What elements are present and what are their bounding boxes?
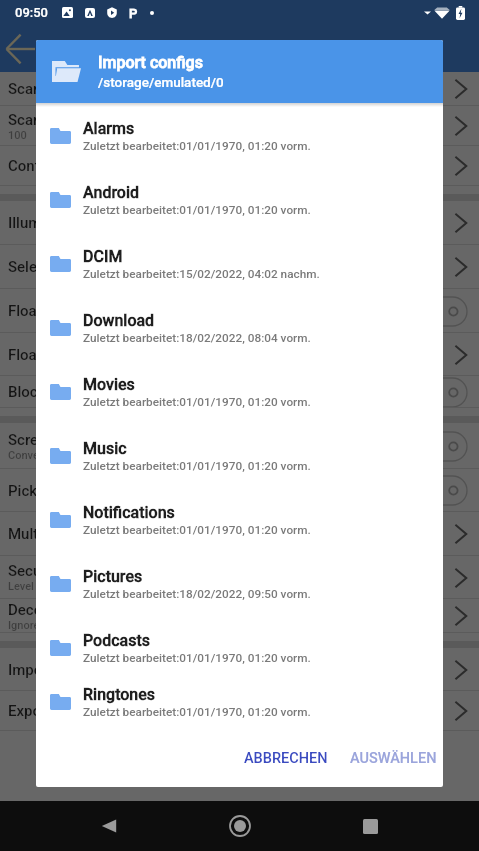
staticText: 100 — [8, 129, 27, 142]
staticText: Zuletzt bearbeitet:18/02/2022, 08:04 vor… — [83, 331, 311, 345]
staticText: Scan mode — [8, 80, 455, 98]
button[interactable]: Music — [36, 424, 443, 488]
staticText: ABBRECHEN — [244, 750, 328, 767]
staticText: Podcasts — [83, 631, 150, 650]
staticText: /storage/emulated/0 — [98, 74, 224, 90]
button[interactable]: Floating button — [0, 333, 479, 376]
button[interactable]: Pictures — [36, 552, 443, 616]
button[interactable]: Import configs — [0, 648, 479, 691]
button[interactable]: Illumination — [0, 201, 479, 245]
button[interactable]: Back — [87, 804, 131, 848]
button[interactable]: Home — [218, 804, 262, 848]
button[interactable]: Pick image — [0, 469, 479, 512]
button[interactable]: Alarms — [36, 104, 443, 168]
staticText: Zuletzt bearbeitet:01/01/1970, 01:20 vor… — [83, 705, 311, 719]
staticText: Zuletzt bearbeitet:18/02/2022, 09:50 vor… — [83, 587, 311, 601]
staticText: Illumination — [8, 214, 88, 232]
staticText: Pictures — [83, 567, 143, 586]
staticText: Import configs — [8, 661, 107, 679]
staticText: Movies — [83, 375, 135, 394]
staticText: Export configs — [8, 702, 106, 720]
staticText: Zuletzt bearbeitet:01/01/1970, 01:20 vor… — [83, 523, 311, 537]
button[interactable]: Decoder options — [0, 599, 479, 633]
staticText: Screen orientation — [8, 431, 132, 449]
button[interactable]: Ringtones — [36, 680, 443, 723]
staticText: Floating window — [8, 302, 118, 320]
staticText: Block duplicates — [8, 383, 119, 401]
staticText: AUSWÄHLEN — [350, 750, 437, 767]
button[interactable]: Security policy — [0, 556, 479, 599]
staticText: Zuletzt bearbeitet:01/01/1970, 01:20 vor… — [83, 651, 311, 665]
button[interactable]: Block duplicates — [0, 376, 479, 408]
staticText: Security policy — [8, 562, 107, 580]
staticText: Android — [83, 183, 140, 202]
staticText: Continuous scan — [8, 157, 121, 175]
staticText: Zuletzt bearbeitet:01/01/1970, 01:20 vor… — [83, 459, 311, 473]
staticText: Music — [83, 439, 127, 458]
staticText: Notifications — [83, 503, 175, 522]
staticText: Alarms — [83, 119, 135, 138]
staticText: Ringtones — [83, 685, 156, 704]
button[interactable]: Scan duration — [0, 106, 479, 146]
staticText: Download — [83, 311, 155, 330]
button[interactable]: Notifications — [36, 488, 443, 552]
button[interactable]: Floating window — [0, 289, 479, 333]
button[interactable]: ABBRECHEN — [234, 741, 338, 776]
button[interactable]: Download — [36, 296, 443, 360]
staticText: DCIM — [83, 247, 123, 266]
button[interactable]: Podcasts — [36, 616, 443, 680]
staticText: Ignore — [8, 619, 40, 632]
button[interactable]: Multi scan — [0, 512, 479, 556]
button[interactable]: Screen orientation — [0, 423, 479, 469]
staticText: Zuletzt bearbeitet:01/01/1970, 01:20 vor… — [83, 203, 311, 217]
staticText: Scan duration — [8, 111, 101, 129]
button[interactable]: Movies — [36, 360, 443, 424]
staticText: Zuletzt bearbeitet:01/01/1970, 01:20 vor… — [83, 395, 311, 409]
staticText: Converted — [8, 449, 59, 462]
staticText: Zuletzt bearbeitet:01/01/1970, 01:20 vor… — [83, 139, 311, 153]
staticText: Pick image — [8, 482, 83, 500]
staticText: Import configs — [98, 53, 203, 72]
staticText: Zuletzt bearbeitet:15/02/2022, 04:02 nac… — [83, 267, 320, 281]
staticText: Multi scan — [8, 525, 78, 543]
button[interactable]: AUSWÄHLEN — [340, 741, 443, 776]
button[interactable]: Continuous scan — [0, 146, 479, 186]
staticText: 09:50 — [15, 5, 48, 20]
staticText: Decoder options — [8, 601, 119, 619]
staticText: Floating button — [8, 346, 110, 364]
button[interactable]: Android — [36, 168, 443, 232]
button[interactable]: DCIM — [36, 232, 443, 296]
staticText: P — [129, 6, 138, 19]
button[interactable]: Select camera — [0, 245, 479, 289]
button[interactable]: Scan mode — [0, 72, 479, 106]
button[interactable]: Back — [0, 29, 40, 69]
staticText: Select camera — [8, 258, 104, 276]
button[interactable]: Recents — [348, 804, 392, 848]
button[interactable]: Export configs — [0, 691, 479, 731]
staticText: Level 1 — [8, 580, 43, 593]
